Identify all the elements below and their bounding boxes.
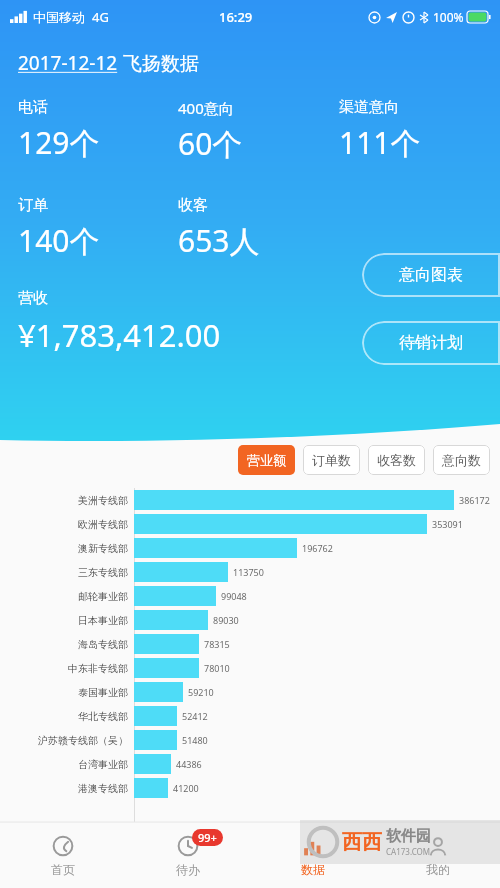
button[interactable]: 待销计划: [362, 321, 500, 365]
staticText: 电话: [18, 98, 48, 117]
button[interactable]: 营业额: [238, 445, 295, 475]
staticText: 400意向: [178, 98, 234, 118]
staticText: 4G: [92, 8, 109, 26]
staticText: 华北专线部: [78, 710, 128, 723]
staticText: 353091: [432, 518, 463, 530]
staticText: 中东非专线部: [68, 662, 128, 675]
staticText: 收客数: [377, 452, 416, 468]
staticText: 西西: [342, 830, 382, 855]
staticText: ¥1,783,412.00: [18, 314, 221, 356]
staticText: 中国移动: [33, 9, 85, 25]
staticText: 111个: [339, 122, 421, 163]
staticText: 待办: [176, 862, 200, 877]
staticText: 订单数: [312, 452, 351, 468]
staticText: 日本事业部: [78, 614, 128, 627]
staticText: 软件园: [386, 827, 431, 846]
staticText: 收客: [178, 196, 208, 215]
staticText: 41200: [173, 782, 199, 794]
staticText: 澳新专线部: [78, 542, 128, 555]
staticText: 196762: [302, 542, 333, 554]
button[interactable]: 数据: [250, 822, 375, 888]
staticText: 待销计划: [399, 333, 463, 353]
staticText: 99048: [221, 590, 247, 602]
staticText: 100%: [433, 9, 464, 25]
staticText: 营业额: [247, 452, 286, 468]
staticText: 78010: [204, 662, 230, 674]
staticText: 60个: [178, 123, 243, 164]
staticText: 沪苏赣专线部（吴）: [38, 734, 128, 747]
button[interactable]: 意向数: [433, 445, 490, 475]
staticText: 113750: [233, 566, 264, 578]
button[interactable]: 收客数: [368, 445, 425, 475]
staticText: 386172: [459, 494, 490, 506]
button[interactable]: 我的: [375, 822, 500, 888]
staticText: 订单: [18, 196, 48, 215]
staticText: 飞扬数据: [118, 50, 199, 76]
other: 待办: [175, 833, 201, 859]
staticText: 意向图表: [399, 265, 463, 285]
staticText: 129个: [18, 122, 100, 163]
staticText: 16:29: [219, 8, 253, 26]
staticText: 意向数: [442, 452, 481, 468]
staticText: 78315: [204, 638, 230, 650]
staticText: 44386: [176, 758, 202, 770]
staticText: 140个: [18, 220, 100, 261]
staticText: CA173.COM: [386, 846, 431, 857]
staticText: 2017-12-12: [18, 50, 118, 76]
staticText: 我的: [426, 862, 450, 877]
staticText: 美洲专线部: [78, 494, 128, 507]
button[interactable]: 订单数: [303, 445, 360, 475]
staticText: 89030: [213, 614, 239, 626]
staticText: 首页: [51, 862, 75, 877]
staticText: 51480: [182, 734, 208, 746]
other: 首页: [50, 833, 76, 859]
staticText: 653人: [178, 220, 260, 261]
button[interactable]: 首页: [0, 822, 125, 888]
other: 数据: [300, 833, 326, 859]
staticText: 泰国事业部: [78, 686, 128, 699]
staticText: 欧洲专线部: [78, 518, 128, 531]
staticText: 52412: [182, 710, 208, 722]
button[interactable]: 待办: [125, 822, 250, 888]
staticText: 三东专线部: [78, 566, 128, 579]
button[interactable]: 意向图表: [362, 253, 500, 297]
staticText: 99+: [198, 830, 217, 845]
staticText: 海岛专线部: [78, 638, 128, 651]
staticText: 59210: [188, 686, 214, 698]
staticText: 邮轮事业部: [78, 590, 128, 603]
staticText: 营收: [18, 289, 48, 308]
staticText: 台湾事业部: [78, 758, 128, 771]
staticText: 数据: [301, 862, 325, 877]
other: 我的: [425, 833, 451, 859]
staticText: 渠道意向: [339, 98, 399, 117]
staticText: 港澳专线部: [78, 782, 128, 795]
